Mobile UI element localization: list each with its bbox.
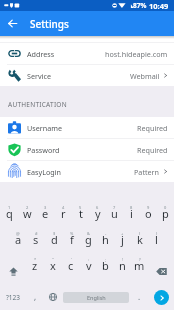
button[interactable]: 6 (89, 206, 106, 232)
staticText: d (51, 232, 58, 247)
staticText: i (130, 206, 133, 221)
button[interactable]: 7 (106, 206, 123, 232)
button[interactable]: 1 (0, 206, 18, 232)
staticText: z (32, 258, 38, 273)
button[interactable]: 3 (36, 206, 54, 232)
button[interactable]: % (63, 232, 80, 258)
button[interactable]: * (26, 258, 44, 284)
staticText: EasyLogin (27, 167, 61, 177)
staticText: s (33, 232, 39, 247)
staticText: Pattern (134, 167, 160, 177)
staticText: * (34, 257, 37, 262)
staticText: ' (71, 257, 72, 262)
staticText: x (50, 258, 56, 273)
button[interactable]: 5 (72, 206, 89, 232)
staticText: w (23, 206, 32, 221)
staticText: 87% (133, 1, 147, 10)
staticText: 4 (62, 205, 65, 210)
button[interactable]: 9 (140, 206, 157, 232)
staticText: u (111, 206, 118, 221)
button[interactable]: @ (9, 232, 27, 258)
staticText: c (68, 258, 74, 273)
staticText: % (70, 231, 74, 236)
staticText: Address (27, 49, 55, 59)
staticText: ! (122, 257, 124, 262)
staticText: h (102, 232, 109, 247)
staticText: ; (105, 257, 107, 262)
staticText: g (85, 232, 92, 247)
staticText: 1 (8, 205, 11, 210)
button[interactable]: & (80, 232, 97, 258)
button[interactable]: EasyLogin (0, 161, 174, 182)
button[interactable]: Password (0, 139, 174, 160)
staticText: # (35, 231, 38, 236)
button[interactable]: Backspace (148, 258, 174, 284)
staticText: Service (27, 71, 51, 81)
staticText: ) (156, 231, 158, 236)
button[interactable]: ( (131, 232, 148, 258)
staticText: o (145, 206, 152, 221)
staticText: English (87, 294, 106, 301)
staticText: 8 (130, 205, 133, 210)
button[interactable]: 8 (123, 206, 140, 232)
staticText: Required (137, 123, 168, 133)
button[interactable]: English (63, 292, 129, 303)
button[interactable]: + (114, 232, 131, 258)
staticText: 3 (44, 205, 47, 210)
button[interactable]: ) (148, 232, 165, 258)
button[interactable]: ' (62, 258, 80, 284)
staticText: 6 (96, 205, 99, 210)
staticText: Username (27, 123, 62, 133)
staticText: e (42, 206, 49, 221)
button[interactable]: ! (114, 258, 131, 284)
button[interactable]: 0 (157, 206, 174, 232)
staticText: b (102, 258, 109, 273)
staticText: . (138, 291, 141, 302)
button[interactable]: Change language (44, 284, 62, 310)
button[interactable]: 2 (18, 206, 36, 232)
button[interactable]: . (130, 284, 148, 310)
staticText: j (121, 232, 124, 247)
button[interactable]: - (97, 232, 114, 258)
button[interactable]: Back (0, 11, 25, 36)
staticText: Webmail (130, 71, 160, 81)
staticText: ?123 (6, 293, 20, 302)
staticText: 7 (113, 205, 116, 210)
button[interactable]: : (80, 258, 97, 284)
staticText: p (162, 206, 169, 221)
staticText: Password (27, 145, 60, 155)
staticText: t (79, 206, 83, 221)
staticText: r (61, 206, 66, 221)
staticText: ? (139, 257, 141, 262)
button[interactable]: , (26, 284, 44, 310)
staticText: Required (137, 145, 168, 155)
button[interactable]: Username (0, 117, 174, 138)
button[interactable]: $ (45, 232, 63, 258)
staticText: 2 (26, 205, 29, 210)
staticText: l (155, 232, 158, 247)
staticText: 5 (79, 205, 82, 210)
button[interactable]: ; (97, 258, 114, 284)
staticText: 0 (164, 205, 167, 210)
staticText: v (86, 258, 92, 273)
staticText: , (34, 291, 37, 302)
button[interactable]: Service (0, 65, 174, 86)
staticText: + (121, 231, 124, 236)
button[interactable]: Enter (148, 284, 174, 310)
staticText: $ (53, 231, 56, 236)
button[interactable]: 4 (54, 206, 72, 232)
staticText: & (87, 231, 90, 236)
button[interactable]: " (44, 258, 62, 284)
staticText: ( (139, 231, 141, 236)
button[interactable]: # (27, 232, 45, 258)
staticText: 9 (147, 205, 150, 210)
staticText: m (134, 258, 145, 273)
staticText: y (95, 206, 101, 221)
staticText: : (88, 257, 90, 262)
button[interactable]: ?123 (0, 284, 26, 310)
button[interactable]: ? (131, 258, 148, 284)
button[interactable]: Address (0, 43, 174, 64)
button[interactable]: Shift (0, 258, 26, 284)
staticText: AUTHENTICATION (8, 100, 67, 109)
staticText: @ (16, 231, 20, 236)
